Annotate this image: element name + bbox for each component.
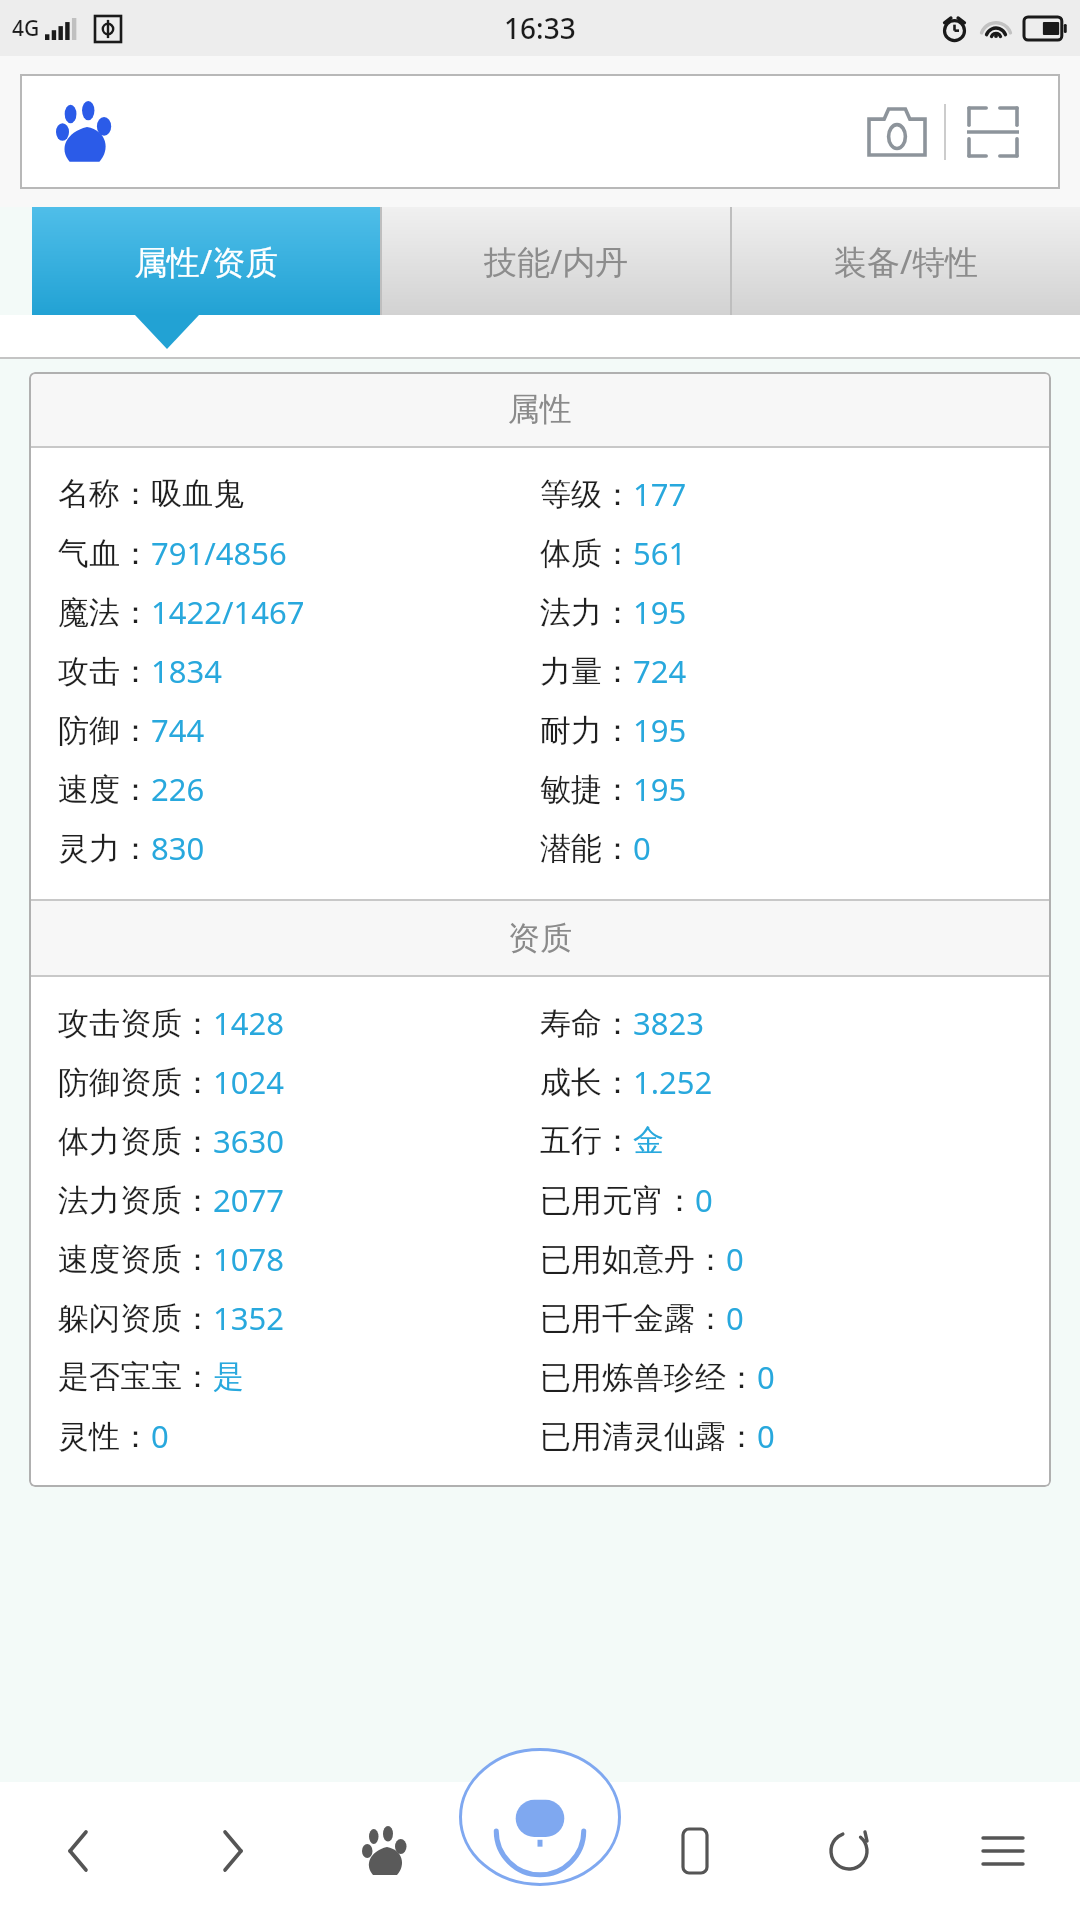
button[interactable]: Search — [20, 74, 1060, 189]
staticText: 躲闪资质： — [58, 1299, 213, 1338]
staticText: 体力资质： — [58, 1122, 213, 1161]
button[interactable]: 装备/特性 — [732, 207, 1080, 315]
staticText: 1428 — [213, 1002, 284, 1044]
staticText: 830 — [151, 827, 205, 869]
staticText: 灵力： — [58, 829, 151, 868]
staticText: 已用千金露： — [540, 1299, 726, 1338]
staticText: 2077 — [213, 1179, 284, 1221]
staticText: 五行： — [540, 1121, 633, 1160]
staticText: 226 — [151, 768, 205, 810]
button[interactable]: Search by image — [860, 95, 934, 169]
staticText: 吸血鬼 — [151, 474, 244, 513]
staticText: 资质 — [508, 918, 572, 958]
staticText: 0 — [695, 1179, 713, 1221]
staticText: 法力： — [540, 593, 633, 632]
button[interactable]: 法力资质： — [29, 1170, 1051, 1229]
button[interactable]: 属性/资质 — [32, 207, 380, 315]
button[interactable]: Tabs — [618, 1782, 772, 1920]
staticText: 防御： — [58, 711, 151, 750]
staticText: 攻击资质： — [58, 1004, 213, 1043]
staticText: 已用元宵： — [540, 1181, 695, 1220]
staticText: 是否宝宝： — [58, 1357, 213, 1396]
button[interactable]: 躲闪资质： — [29, 1288, 1051, 1347]
staticText: 1078 — [213, 1238, 284, 1280]
staticText: 177 — [633, 473, 687, 515]
staticText: 属性 — [508, 389, 572, 429]
staticText: 技能/内丹 — [484, 239, 629, 284]
button[interactable]: Forward — [155, 1782, 310, 1920]
button[interactable]: 体力资质： — [29, 1111, 1051, 1170]
button[interactable]: 速度： — [29, 759, 1051, 818]
button[interactable]: 攻击资质： — [29, 993, 1051, 1052]
button[interactable]: 防御： — [29, 700, 1051, 759]
staticText: 属性/资质 — [134, 239, 279, 284]
staticText: 561 — [633, 532, 687, 574]
staticText: 3823 — [633, 1002, 704, 1044]
staticText: 名称： — [58, 474, 151, 513]
staticText: 速度： — [58, 770, 151, 809]
button[interactable]: 灵力： — [29, 818, 1051, 877]
button[interactable]: 速度资质： — [29, 1229, 1051, 1288]
button[interactable]: 魔法： — [29, 582, 1051, 641]
staticText: 0 — [726, 1238, 744, 1280]
staticText: 气血： — [58, 534, 151, 573]
staticText: 0 — [151, 1415, 169, 1457]
staticText: 装备/特性 — [834, 239, 979, 284]
button[interactable]: Refresh — [772, 1782, 926, 1920]
staticText: 1.252 — [633, 1061, 713, 1103]
staticText: 法力资质： — [58, 1181, 213, 1220]
staticText: 195 — [633, 709, 687, 751]
staticText: 防御资质： — [58, 1063, 213, 1102]
button[interactable]: 灵性： — [29, 1406, 1051, 1465]
staticText: 体质： — [540, 534, 633, 573]
staticText: 1422/1467 — [151, 591, 305, 633]
staticText: 0 — [757, 1415, 775, 1457]
staticText: 等级： — [540, 475, 633, 514]
button[interactable]: 气血： — [29, 523, 1051, 582]
button[interactable]: Menu — [926, 1782, 1080, 1920]
staticText: 已用清灵仙露： — [540, 1417, 757, 1456]
staticText: 195 — [633, 768, 687, 810]
staticText: 744 — [151, 709, 205, 751]
staticText: 724 — [633, 650, 687, 692]
button[interactable]: 防御资质： — [29, 1052, 1051, 1111]
staticText: 成长： — [540, 1063, 633, 1102]
staticText: 4G — [12, 14, 40, 43]
staticText: 是 — [213, 1357, 244, 1396]
staticText: 0 — [726, 1297, 744, 1339]
staticText: 1024 — [213, 1061, 284, 1103]
staticText: 0 — [633, 827, 651, 869]
staticText: 金 — [633, 1121, 664, 1160]
staticText: 1834 — [151, 650, 222, 692]
button[interactable]: 名称： — [29, 464, 1051, 523]
button[interactable]: 是否宝宝： — [29, 1347, 1051, 1406]
staticText: 力量： — [540, 652, 633, 691]
staticText: 寿命： — [540, 1004, 633, 1043]
staticText: 16:33 — [504, 9, 576, 47]
button[interactable]: Voice search — [459, 1748, 621, 1886]
staticText: 791/4856 — [151, 532, 287, 574]
staticText: 魔法： — [58, 593, 151, 632]
staticText: 1352 — [213, 1297, 284, 1339]
button[interactable]: Scan code — [956, 95, 1030, 169]
button[interactable]: 技能/内丹 — [382, 207, 730, 315]
button[interactable]: 攻击： — [29, 641, 1051, 700]
staticText: 已用如意丹： — [540, 1240, 726, 1279]
staticText: 速度资质： — [58, 1240, 213, 1279]
staticText: 潜能： — [540, 829, 633, 868]
staticText: 0 — [757, 1356, 775, 1398]
staticText: 195 — [633, 591, 687, 633]
staticText: 敏捷： — [540, 770, 633, 809]
staticText: 已用炼兽珍经： — [540, 1358, 757, 1397]
staticText: 3630 — [213, 1120, 284, 1162]
staticText: 攻击： — [58, 652, 151, 691]
button[interactable]: Home — [310, 1782, 464, 1920]
staticText: 耐力： — [540, 711, 633, 750]
staticText: 灵性： — [58, 1417, 151, 1456]
button[interactable]: Back — [0, 1782, 155, 1920]
